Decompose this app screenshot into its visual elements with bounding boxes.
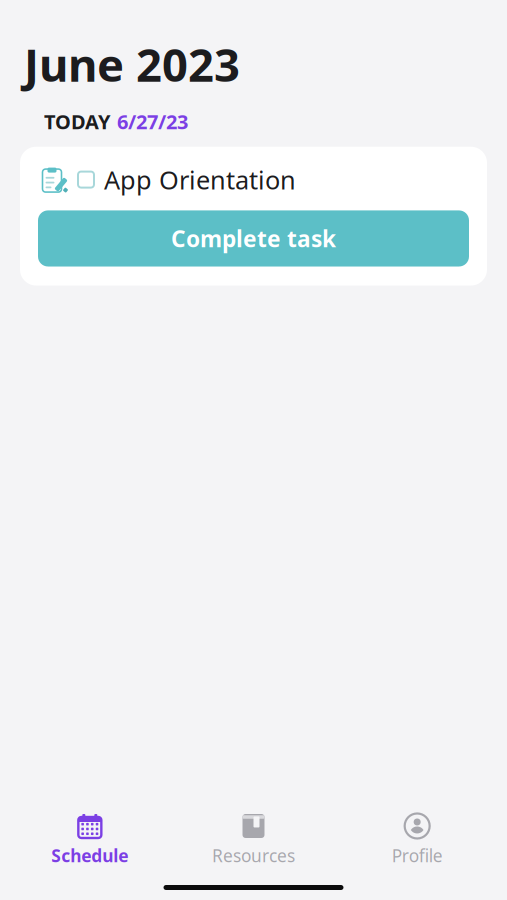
staticText: 6/27/23	[117, 108, 188, 135]
staticText: June 2023	[24, 34, 240, 94]
staticText: Schedule	[51, 844, 128, 867]
staticText: Complete task	[171, 223, 336, 253]
button[interactable]: Resources	[172, 808, 335, 871]
button[interactable]: Complete task	[38, 210, 469, 266]
button[interactable]: Schedule	[8, 808, 172, 871]
staticText: Resources	[212, 844, 295, 867]
staticText: TODAY	[44, 108, 111, 135]
staticText: Profile	[392, 844, 443, 867]
staticText: App Orientation	[104, 163, 296, 196]
button[interactable]: Profile	[335, 808, 499, 871]
